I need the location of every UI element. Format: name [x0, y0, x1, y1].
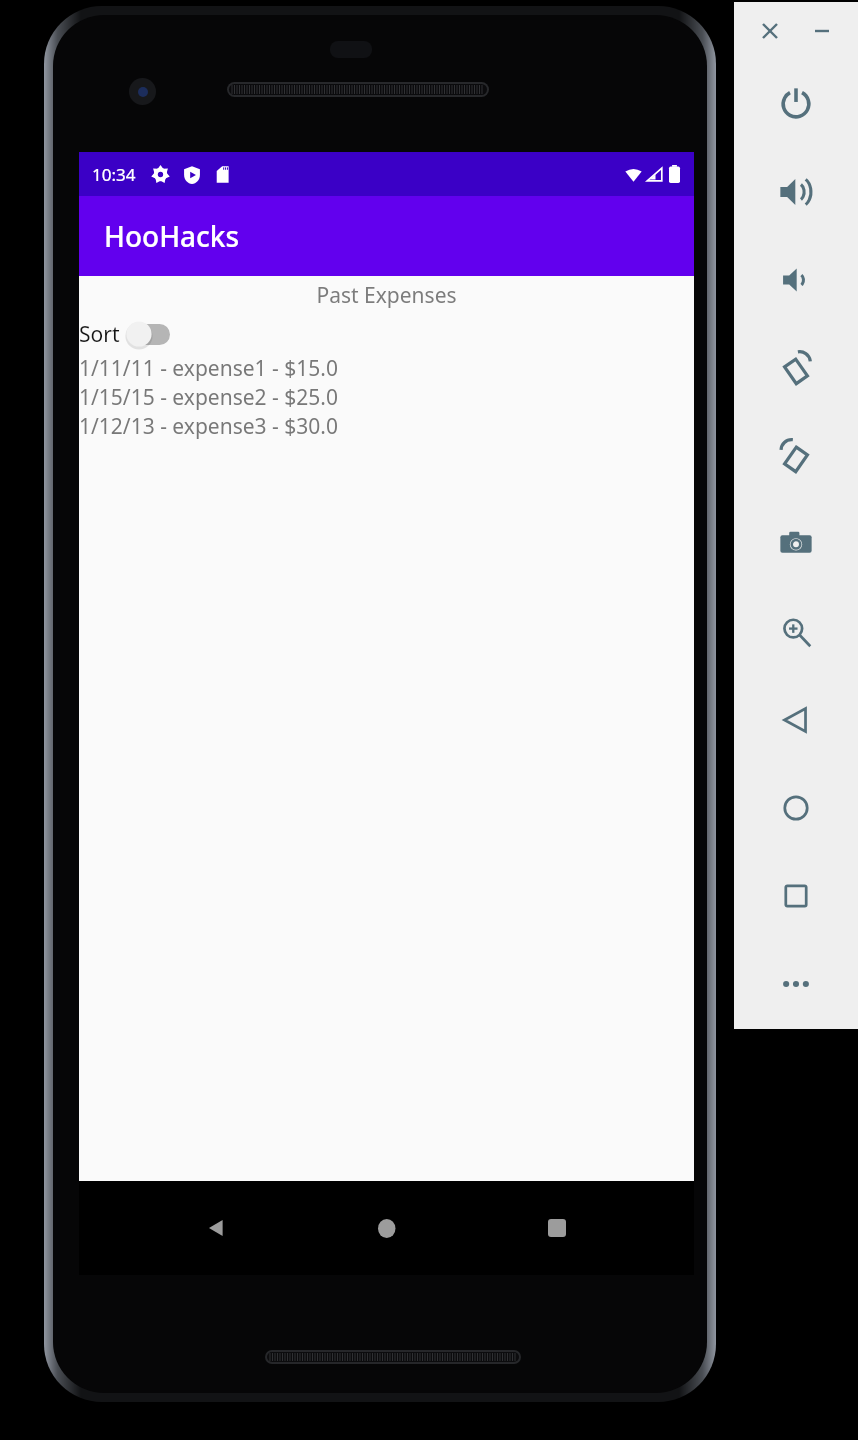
button[interactable]: Minimize: [804, 13, 840, 49]
button[interactable]: Back: [183, 1195, 249, 1261]
button[interactable]: Volume down: [734, 236, 858, 324]
button[interactable]: Volume up: [734, 148, 858, 236]
button[interactable]: Sort: [79, 318, 173, 350]
button[interactable]: Overview: [734, 852, 858, 940]
button[interactable]: 1/15/15 - expense2 - $25.0: [79, 383, 694, 412]
button[interactable]: Rotate left: [734, 324, 858, 412]
button[interactable]: Rotate right: [734, 412, 858, 500]
button[interactable]: Take screenshot: [734, 500, 858, 588]
staticText: 10:34: [92, 163, 136, 186]
button[interactable]: Home: [354, 1195, 420, 1261]
button[interactable]: HooHacks: [79, 196, 694, 276]
staticText: Sort: [79, 320, 120, 349]
button[interactable]: 1/11/11 - expense1 - $15.0: [79, 354, 694, 383]
button[interactable]: More: [734, 940, 858, 1028]
button[interactable]: Sort toggle: [123, 318, 173, 350]
button[interactable]: Close: [752, 13, 788, 49]
button[interactable]: Back: [734, 676, 858, 764]
staticText: 1/15/15 - expense2 - $25.0: [79, 383, 338, 412]
button[interactable]: Zoom: [734, 588, 858, 676]
staticText: 1/11/11 - expense1 - $15.0: [79, 354, 338, 383]
button[interactable]: 1/12/13 - expense3 - $30.0: [79, 412, 694, 441]
staticText: 1/12/13 - expense3 - $30.0: [79, 412, 338, 441]
button[interactable]: Recents: [524, 1195, 590, 1261]
staticText: Past Expenses: [79, 281, 694, 310]
staticText: HooHacks: [104, 217, 240, 255]
button[interactable]: Home: [734, 764, 858, 852]
button[interactable]: Power: [734, 60, 858, 148]
